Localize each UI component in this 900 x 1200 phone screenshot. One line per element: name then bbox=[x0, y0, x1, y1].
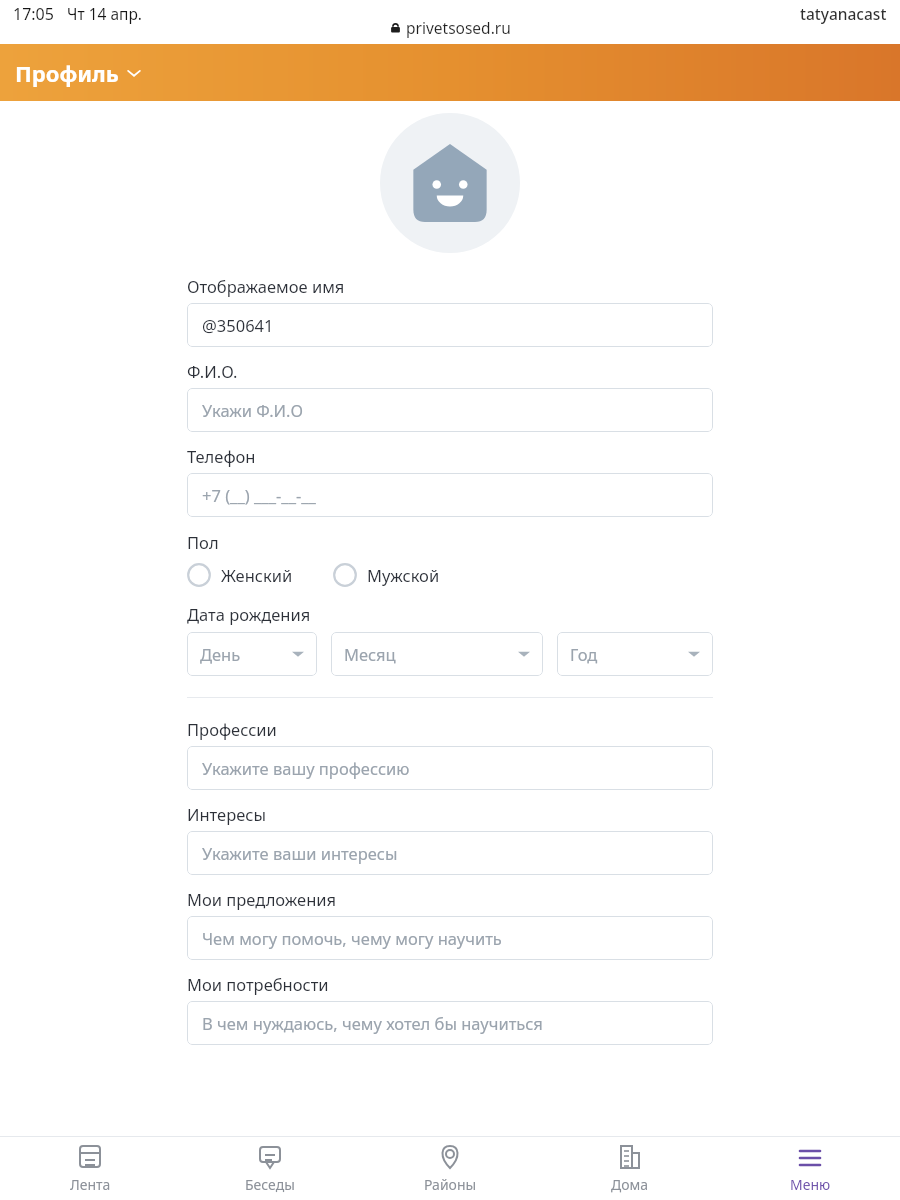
button[interactable]: В чем нуждаюсь, чему хотел бы научиться bbox=[187, 1001, 713, 1045]
staticText: Мои потребности bbox=[187, 973, 329, 995]
button[interactable]: Беседы bbox=[180, 1138, 360, 1200]
staticText: Пол bbox=[187, 531, 219, 553]
staticText: День bbox=[200, 643, 241, 665]
button[interactable]: Женский bbox=[187, 561, 293, 589]
button[interactable]: Месяц bbox=[331, 632, 543, 676]
button[interactable]: Районы bbox=[360, 1138, 540, 1200]
staticText: tatyanacast bbox=[800, 3, 887, 24]
staticText: Интересы bbox=[187, 803, 266, 825]
staticText: @350641 bbox=[202, 314, 274, 336]
staticText: Профессии bbox=[187, 718, 277, 740]
staticText: Чем могу помочь, чему могу научить bbox=[202, 927, 502, 949]
staticText: Укажи Ф.И.О bbox=[202, 399, 304, 421]
staticText: Ф.И.О. bbox=[187, 360, 238, 382]
button[interactable]: Чем могу помочь, чему могу научить bbox=[187, 916, 713, 960]
staticText: Укажите вашу профессию bbox=[202, 757, 410, 779]
staticText: Телефон bbox=[187, 445, 256, 467]
staticText: Профиль bbox=[15, 58, 119, 88]
staticText: Чт 14 апр. bbox=[67, 3, 143, 24]
staticText: Отображаемое имя bbox=[187, 275, 345, 297]
button[interactable]: Профиль bbox=[15, 58, 141, 88]
button[interactable]: Укажите вашу профессию bbox=[187, 746, 713, 790]
button[interactable]: Лента bbox=[0, 1138, 180, 1200]
staticText: Беседы bbox=[245, 1175, 295, 1194]
staticText: Месяц bbox=[344, 643, 396, 665]
staticText: +7 (__) ___-__-__ bbox=[202, 484, 316, 506]
button[interactable]: @350641 bbox=[187, 303, 713, 347]
staticText: Районы bbox=[424, 1175, 477, 1194]
staticText: Дата рождения bbox=[187, 603, 311, 625]
staticText: Год bbox=[570, 643, 598, 665]
staticText: Лента bbox=[70, 1175, 111, 1194]
button[interactable]: Меню bbox=[720, 1138, 900, 1200]
staticText: Меню bbox=[790, 1175, 831, 1194]
button[interactable]: Укажи Ф.И.О bbox=[187, 388, 713, 432]
staticText: Мои предложения bbox=[187, 888, 337, 910]
staticText: privetsosed.ru bbox=[406, 17, 511, 38]
button[interactable]: Год bbox=[557, 632, 713, 676]
button[interactable]: +7 (__) ___-__-__ bbox=[187, 473, 713, 517]
button[interactable]: Дома bbox=[540, 1138, 720, 1200]
staticText: В чем нуждаюсь, чему хотел бы научиться bbox=[202, 1012, 543, 1034]
staticText: Укажите ваши интересы bbox=[202, 842, 398, 864]
button[interactable]: Мужской bbox=[333, 561, 440, 589]
button[interactable]: Укажите ваши интересы bbox=[187, 831, 713, 875]
button[interactable]: День bbox=[187, 632, 317, 676]
staticText: Женский bbox=[221, 564, 293, 586]
staticText: Мужской bbox=[367, 564, 440, 586]
button[interactable]: Изменить аватар bbox=[380, 113, 520, 253]
staticText: Дома bbox=[611, 1175, 649, 1194]
staticText: 17:05 bbox=[13, 3, 54, 25]
